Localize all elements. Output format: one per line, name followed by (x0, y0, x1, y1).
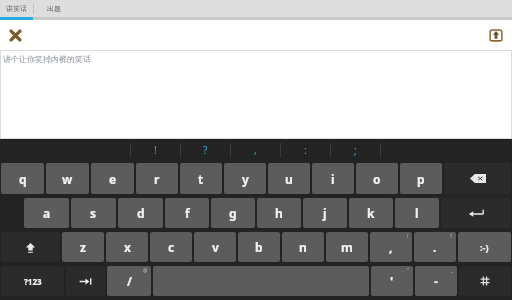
staticText: / (127, 273, 132, 289)
staticText: d (137, 205, 145, 221)
staticText: x (124, 239, 131, 255)
button[interactable]: y (224, 163, 266, 194)
button[interactable]: , (231, 139, 280, 161)
button[interactable]: . (414, 232, 456, 262)
button[interactable]: b (238, 232, 280, 262)
button[interactable]: d (118, 198, 163, 228)
staticText: " (407, 267, 410, 274)
staticText: q (19, 171, 27, 187)
button[interactable]: j (303, 198, 347, 228)
button[interactable]: ! (131, 139, 180, 161)
staticText: r (154, 171, 160, 187)
staticText: :-) (480, 241, 489, 253)
staticText: v (212, 239, 219, 255)
button[interactable]: r (136, 163, 178, 194)
button[interactable]: w (46, 163, 89, 194)
staticText: z (80, 239, 86, 255)
button[interactable]: s (71, 198, 116, 228)
staticText: s (90, 205, 97, 221)
button[interactable]: Close (0, 20, 30, 50)
button[interactable]: 讲个让你笑掉内裤的笑话 (0, 50, 512, 138)
staticText: k (367, 205, 375, 221)
staticText: ; (354, 143, 357, 157)
button[interactable]: Enter (441, 198, 511, 228)
button[interactable]: f (165, 198, 209, 228)
button[interactable]: 讲笑话 (0, 0, 33, 17)
staticText: l (415, 205, 419, 221)
button[interactable]: p (400, 163, 442, 194)
button[interactable]: l (395, 198, 439, 228)
button[interactable]: , (370, 232, 412, 262)
staticText: @ (143, 267, 148, 274)
staticText: , (254, 143, 257, 157)
button[interactable]: n (282, 232, 324, 262)
button[interactable]: - (415, 266, 457, 296)
button[interactable]: 出题 (34, 0, 74, 17)
staticText: o (373, 171, 381, 187)
staticText: _ (451, 267, 454, 274)
button[interactable]: ' (371, 266, 413, 296)
staticText: t (198, 171, 204, 187)
staticText: ? (450, 233, 453, 240)
button[interactable]: a (24, 198, 69, 228)
button[interactable]: g (211, 198, 255, 228)
button[interactable]: k (349, 198, 393, 228)
staticText: 讲个让你笑掉内裤的笑话 (3, 54, 91, 64)
staticText: g (229, 205, 237, 221)
staticText: i (331, 171, 335, 187)
button[interactable]: Backspace (444, 163, 511, 194)
staticText: 讲笑话 (6, 4, 27, 13)
staticText: . (433, 239, 437, 255)
button[interactable]: e (91, 163, 134, 194)
staticText: - (434, 273, 438, 289)
staticText: n (299, 239, 307, 255)
button[interactable]: :-) (458, 232, 511, 262)
button[interactable]: Tab (66, 266, 105, 296)
staticText: ? (203, 143, 208, 157)
button[interactable]: u (268, 163, 310, 194)
button[interactable]: i (312, 163, 354, 194)
staticText: b (255, 239, 263, 255)
staticText: m (341, 239, 353, 255)
staticText: u (285, 171, 293, 187)
button[interactable]: x (106, 232, 148, 262)
staticText: ?123 (24, 276, 42, 287)
button[interactable]: v (194, 232, 236, 262)
button[interactable]: ?123 (1, 266, 64, 296)
button[interactable]: o (356, 163, 398, 194)
staticText: ! (154, 143, 157, 157)
button[interactable]: Send (483, 22, 509, 48)
staticText: ! (407, 233, 409, 240)
button[interactable]: : (281, 139, 330, 161)
button[interactable]: z (62, 232, 104, 262)
staticText: y (242, 171, 249, 187)
staticText: : (304, 143, 307, 157)
staticText: c (168, 239, 175, 255)
staticText: j (323, 205, 327, 221)
button[interactable]: q (1, 163, 44, 194)
button[interactable]: ; (331, 139, 380, 161)
staticText: , (389, 239, 393, 255)
staticText: h (275, 205, 283, 221)
staticText: w (62, 171, 73, 187)
button[interactable]: Shift (1, 232, 60, 262)
staticText: f (185, 205, 190, 221)
button[interactable]: / (107, 266, 151, 296)
staticText: e (109, 171, 117, 187)
button[interactable]: t (180, 163, 222, 194)
button[interactable]: h (257, 198, 301, 228)
staticText: p (417, 171, 425, 187)
button[interactable]: Switch input method (459, 266, 511, 296)
staticText: ' (390, 273, 394, 289)
staticText: a (43, 205, 51, 221)
button[interactable]: c (150, 232, 192, 262)
staticText: 出题 (47, 4, 61, 13)
button[interactable]: m (326, 232, 368, 262)
button[interactable]: ? (181, 139, 230, 161)
